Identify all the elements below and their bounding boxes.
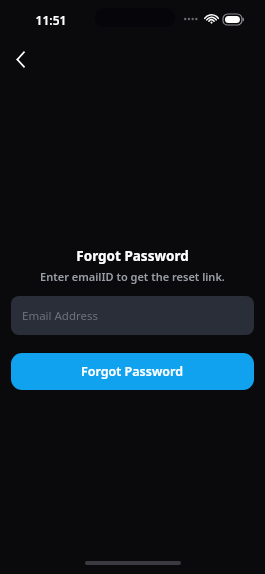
staticText: Forgot Password: [11, 247, 254, 265]
button[interactable]: Back: [3, 41, 39, 77]
staticText: Email Address: [22, 308, 99, 324]
button[interactable]: Email Address: [11, 296, 254, 335]
staticText: Enter emailID to get the reset link.: [11, 269, 254, 284]
staticText: 11:51: [29, 12, 73, 28]
button[interactable]: Forgot Password: [11, 353, 254, 390]
staticText: Forgot Password: [81, 363, 184, 380]
